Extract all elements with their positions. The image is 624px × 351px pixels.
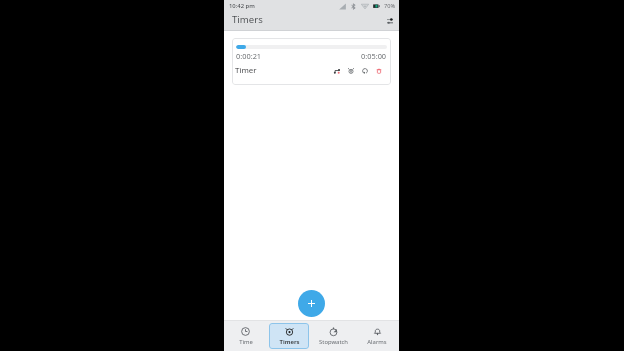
button[interactable]: Resume <box>331 65 342 76</box>
staticText: Timers <box>279 338 300 346</box>
staticText: Stopwatch <box>319 338 348 346</box>
staticText: Timers <box>232 13 263 26</box>
button[interactable]: Settings <box>383 14 396 27</box>
staticText: Time <box>239 338 253 346</box>
button[interactable]: 0:00:21 <box>232 38 391 85</box>
button[interactable]: Add timer <box>298 290 325 317</box>
button[interactable]: Pause <box>345 65 356 76</box>
button[interactable]: Time <box>226 323 265 349</box>
staticText: 0:05:00 <box>361 51 387 61</box>
staticText: Timer <box>235 65 257 76</box>
button[interactable]: Stopwatch <box>313 323 353 349</box>
staticText: 10:42 pm <box>229 2 255 10</box>
button[interactable]: Delete <box>373 65 384 76</box>
button[interactable]: Alarms <box>357 323 397 349</box>
button[interactable]: Reset <box>359 65 370 76</box>
staticText: Alarms <box>367 338 387 346</box>
button[interactable]: Timers <box>269 323 309 349</box>
staticText: 70% <box>384 2 396 10</box>
staticText: 0:00:21 <box>236 51 262 61</box>
